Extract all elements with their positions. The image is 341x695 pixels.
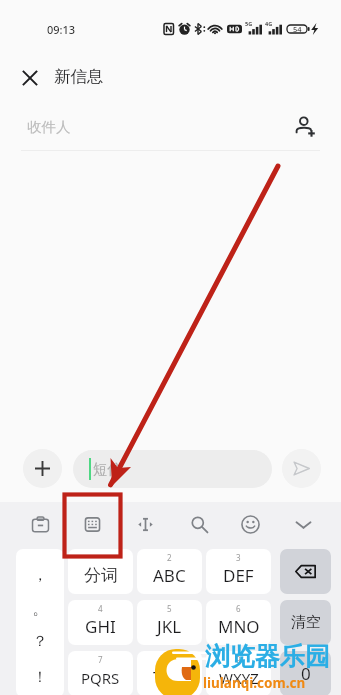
staticText: PQRS: [81, 668, 120, 688]
staticText: 3: [236, 552, 241, 563]
staticText: ！: [16, 668, 64, 687]
button[interactable]: Search: [178, 502, 220, 547]
button[interactable]: 5: [137, 600, 202, 645]
button[interactable]: Backspace: [280, 549, 331, 594]
staticText: TUV: [153, 666, 186, 689]
button[interactable]: Add recipient: [290, 111, 320, 141]
staticText: 4G: [265, 20, 273, 27]
staticText: 清空: [291, 613, 321, 632]
staticText: 分词: [84, 565, 118, 586]
staticText: ，: [16, 566, 64, 585]
button[interactable]: 分词: [68, 549, 133, 594]
staticText: 。: [16, 600, 64, 619]
staticText: 短信: [93, 460, 122, 478]
button[interactable]: 4: [68, 600, 133, 645]
button[interactable]: 0: [280, 651, 331, 695]
button[interactable]: ，: [16, 549, 64, 695]
staticText: 9: [236, 654, 241, 665]
staticText: 浏览器乐园: [205, 641, 330, 672]
button[interactable]: 清空: [280, 600, 331, 645]
button[interactable]: 8: [137, 651, 202, 695]
button[interactable]: 9: [206, 651, 271, 695]
staticText: 6: [236, 603, 241, 614]
staticText: 0: [301, 662, 311, 685]
button[interactable]: 3: [206, 549, 271, 594]
staticText: 2: [167, 552, 172, 563]
button[interactable]: 收件人: [0, 100, 341, 151]
staticText: 8: [167, 654, 172, 665]
staticText: WXYZ: [219, 668, 259, 688]
staticText: 54: [293, 24, 302, 34]
staticText: 09:13: [47, 22, 76, 37]
staticText: MNO: [218, 615, 260, 638]
staticText: 收件人: [27, 118, 71, 136]
button[interactable]: Move cursor: [124, 502, 166, 547]
staticText: 4: [98, 603, 103, 614]
button[interactable]: Hide keyboard: [282, 502, 324, 547]
button[interactable]: Send: [282, 449, 321, 488]
staticText: 5G: [245, 20, 253, 27]
button[interactable]: Clipboard: [19, 502, 61, 547]
button[interactable]: 2: [137, 549, 202, 594]
staticText: JKL: [157, 615, 182, 638]
staticText: ABC: [153, 564, 186, 587]
button[interactable]: 7: [68, 651, 133, 695]
button[interactable]: Close: [15, 63, 44, 92]
button[interactable]: 短信: [73, 450, 272, 488]
button[interactable]: Keyboard: [71, 502, 113, 547]
button[interactable]: Emoji: [229, 502, 271, 547]
staticText: 5: [167, 603, 172, 614]
staticText: DEF: [223, 564, 254, 587]
staticText: 新信息: [54, 66, 104, 87]
staticText: liulanqi.com.cn: [203, 674, 306, 692]
staticText: GHI: [85, 615, 116, 638]
button[interactable]: 6: [206, 600, 271, 645]
staticText: ？: [16, 632, 64, 651]
button[interactable]: Add attachment: [23, 449, 62, 488]
staticText: 7: [98, 654, 103, 665]
